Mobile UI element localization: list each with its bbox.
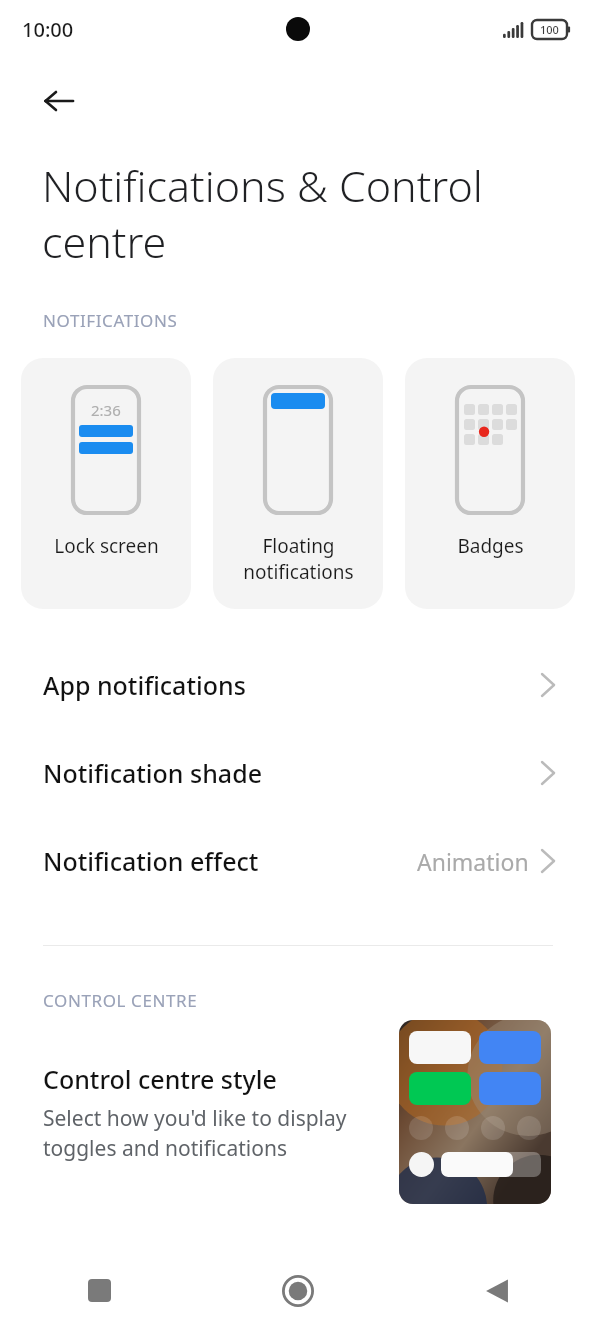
- staticText: Floating notifications: [243, 533, 354, 584]
- staticText: Notifications & Control centre: [42, 156, 536, 271]
- staticText: Lock screen: [54, 533, 159, 559]
- button[interactable]: Back: [30, 72, 88, 130]
- staticText: 10:00: [22, 16, 74, 43]
- staticText: App notifications: [43, 668, 246, 702]
- staticText: Animation: [417, 846, 529, 877]
- button[interactable]: Notification shade: [0, 729, 596, 817]
- staticText: Notification shade: [43, 756, 262, 790]
- staticText: Badges: [457, 533, 524, 559]
- button[interactable]: Recents: [0, 1255, 198, 1326]
- staticText: Select how you'd like to display toggles…: [43, 1104, 385, 1162]
- button[interactable]: Back: [397, 1255, 596, 1326]
- button[interactable]: Notification effect: [0, 817, 596, 905]
- button[interactable]: App notifications: [0, 641, 596, 729]
- staticText: Notification effect: [43, 844, 259, 878]
- button[interactable]: Control centre style: [0, 1012, 596, 1212]
- staticText: CONTROL CENTRE: [43, 989, 198, 1012]
- button[interactable]: Home: [198, 1255, 397, 1326]
- staticText: NOTIFICATIONS: [43, 309, 178, 332]
- button[interactable]: Floating notifications: [213, 358, 383, 609]
- staticText: 2:36: [91, 400, 121, 420]
- button[interactable]: 2:36: [21, 358, 191, 609]
- staticText: Control centre style: [43, 1062, 277, 1096]
- button[interactable]: Badges: [405, 358, 575, 609]
- staticText: 100: [540, 22, 559, 37]
